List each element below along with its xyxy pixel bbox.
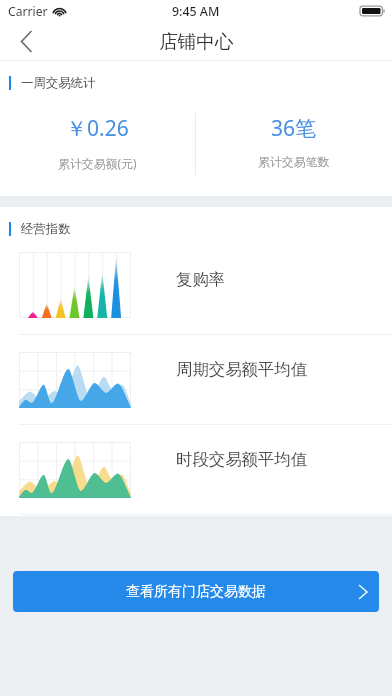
staticText: Carrier [8,3,48,20]
button[interactable]: 周期交易额平均值 [0,335,392,425]
button[interactable]: 复购率 [0,245,392,335]
button[interactable]: 时段交易额平均值 [0,425,392,515]
staticText: 9:45 AM [172,3,220,20]
button[interactable]: 查看所有门店交易数据 [13,571,379,612]
staticText: 经营指数 [21,221,71,237]
staticText: 查看所有门店交易数据 [126,583,266,601]
button[interactable]: ￥0.26 [0,99,195,171]
button[interactable]: Back [0,22,52,61]
staticText: 周期交易额平均值 [176,359,308,380]
staticText: 36笔 [271,114,317,143]
staticText: ￥0.26 [66,114,129,143]
staticText: 累计交易笔数 [258,155,330,170]
staticText: 累计交易额(元) [58,155,137,171]
staticText: 一周交易统计 [21,75,96,91]
staticText: 店铺中心 [159,30,234,53]
button[interactable]: 36笔 [196,99,392,170]
staticText: 时段交易额平均值 [176,449,308,470]
staticText: 复购率 [176,269,226,290]
